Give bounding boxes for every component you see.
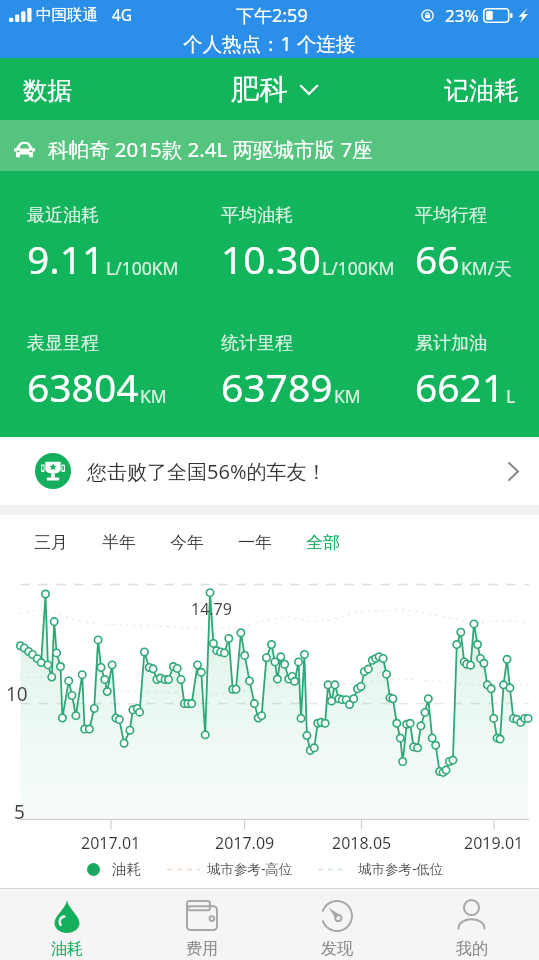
staticText: 平均油耗 [221, 204, 293, 227]
staticText: 10 [6, 681, 28, 707]
staticText: 中国联通 [36, 5, 98, 25]
staticText: 费用 [186, 939, 218, 959]
staticText: L/100KM [106, 256, 179, 280]
staticText: 2017.01 [81, 832, 141, 854]
button[interactable]: 数据 [0, 58, 92, 120]
staticText: KM [334, 384, 361, 408]
staticText: 14.79 [191, 598, 232, 620]
button[interactable]: 油耗 [0, 889, 134, 960]
staticText: 10.30 [221, 232, 321, 285]
staticText: L [506, 384, 516, 408]
staticText: 城市参考-低位 [358, 860, 444, 878]
button[interactable]: 我的 [404, 889, 539, 960]
staticText: 最近油耗 [27, 204, 99, 227]
button[interactable]: 全部 [290, 522, 356, 563]
staticText: 全部 [306, 532, 340, 553]
button[interactable]: 费用 [134, 889, 269, 960]
staticText: 5 [14, 799, 25, 825]
staticText: 66 [415, 232, 460, 285]
staticText: 今年 [170, 532, 204, 553]
staticText: 三月 [34, 532, 68, 553]
button[interactable]: 发现 [269, 889, 404, 960]
staticText: 平均行程 [415, 204, 487, 227]
staticText: 肥科 [231, 72, 288, 108]
staticText: 9.11 [27, 232, 105, 285]
button[interactable]: 肥科 [221, 58, 328, 120]
button[interactable]: 三月 [18, 522, 84, 563]
staticText: 个人热点：1 个连接 [183, 30, 356, 57]
staticText: KM [140, 384, 167, 408]
staticText: 下午2:59 [236, 3, 308, 28]
staticText: 我的 [456, 939, 488, 959]
staticText: 63804 [27, 360, 139, 413]
button[interactable]: 一年 [222, 522, 288, 563]
staticText: 油耗 [112, 860, 141, 878]
staticText: 发现 [321, 939, 353, 959]
staticText: 一年 [238, 532, 272, 553]
staticText: KM/天 [461, 256, 512, 280]
staticText: 2019.01 [464, 832, 524, 854]
staticText: 表显里程 [27, 332, 99, 355]
button[interactable]: 您击败了全国56%的车友！ [0, 437, 539, 505]
button[interactable]: 半年 [86, 522, 152, 563]
staticText: 科帕奇 2015款 2.4L 两驱城市版 7座 [48, 135, 373, 163]
staticText: 63789 [221, 360, 333, 413]
staticText: 记油耗 [444, 75, 519, 106]
staticText: 2018.05 [332, 832, 392, 854]
staticText: 6621 [415, 360, 505, 413]
staticText: 城市参考-高位 [207, 860, 293, 878]
staticText: L/100KM [322, 256, 395, 280]
staticText: 统计里程 [221, 332, 293, 355]
staticText: 2017.09 [215, 832, 275, 854]
button[interactable]: 记油耗 [424, 58, 539, 120]
staticText: 累计加油 [415, 332, 487, 355]
staticText: 4G [112, 4, 133, 25]
button[interactable]: 今年 [154, 522, 220, 563]
staticText: 半年 [102, 532, 136, 553]
staticText: 23% [445, 4, 479, 27]
staticText: 数据 [23, 75, 72, 106]
staticText: 油耗 [51, 939, 83, 959]
button[interactable]: 科帕奇 2015款 2.4L 两驱城市版 7座 [0, 120, 539, 171]
staticText: 您击败了全国56%的车友！ [87, 458, 327, 485]
